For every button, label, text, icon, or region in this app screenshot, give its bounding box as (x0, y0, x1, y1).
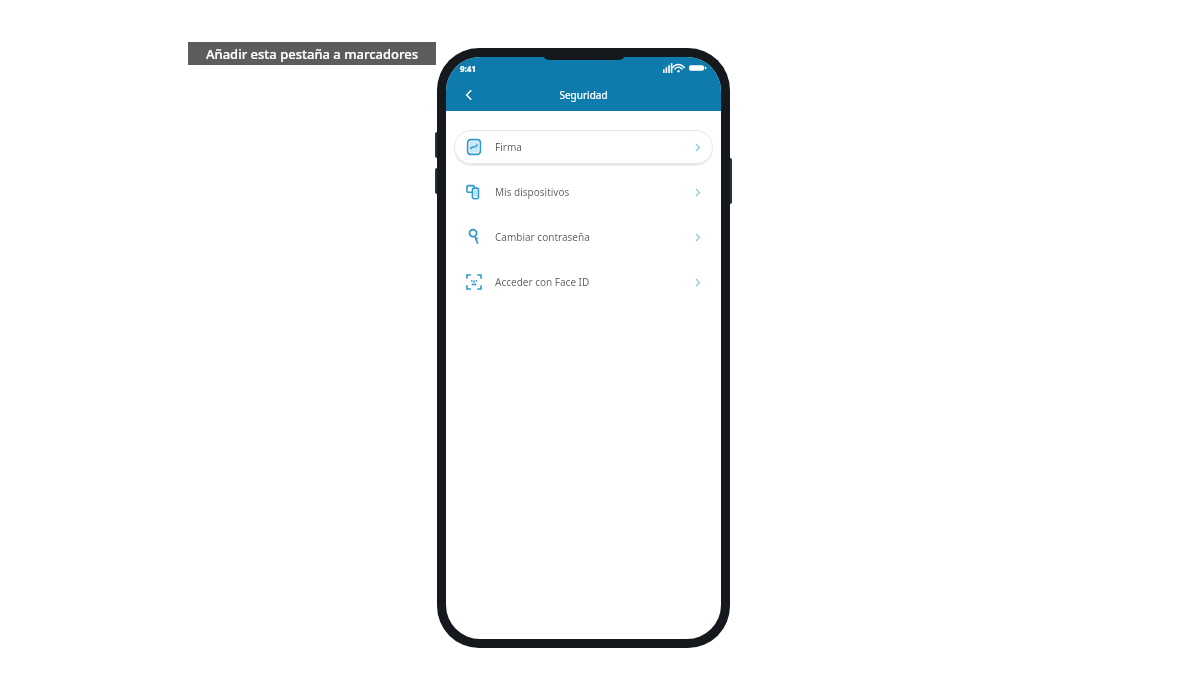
staticText: Firma (495, 140, 522, 154)
button[interactable]: Mis dispositivos (446, 175, 721, 209)
staticText: 9:41 (460, 63, 476, 74)
staticText: Acceder con Face ID (495, 275, 590, 289)
staticText: Mis dispositivos (495, 185, 570, 199)
button[interactable]: Añadir esta pestaña a marcadores (188, 42, 436, 65)
button[interactable]: Cambiar contraseña (446, 220, 721, 254)
button[interactable]: Atrás (454, 80, 484, 110)
staticText: Cambiar contraseña (495, 230, 590, 244)
staticText: Añadir esta pestaña a marcadores (206, 45, 418, 63)
staticText: Seguridad (559, 88, 608, 102)
button[interactable]: Firma (454, 130, 713, 164)
button[interactable]: Acceder con Face ID (446, 265, 721, 299)
